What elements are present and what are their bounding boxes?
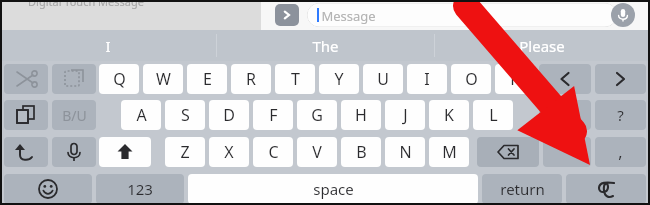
staticText: O: [465, 68, 478, 90]
button[interactable]: D: [209, 100, 249, 130]
button[interactable]: S: [165, 100, 205, 130]
button[interactable]: G: [297, 100, 337, 130]
button[interactable]: 123: [96, 174, 184, 204]
staticText: Please: [519, 36, 565, 56]
button[interactable]: space: [188, 174, 478, 204]
staticText: ?: [617, 105, 624, 125]
staticText: 123: [127, 179, 153, 199]
staticText: B: [356, 141, 367, 163]
button[interactable]: Undo: [4, 137, 48, 167]
staticText: I: [424, 68, 430, 90]
staticText: S: [181, 104, 190, 126]
button[interactable]: J: [385, 100, 425, 130]
staticText: C: [268, 141, 279, 163]
button[interactable]: B: [341, 137, 381, 167]
staticText: The: [312, 36, 339, 56]
staticText: Digital Touch Message: [28, 0, 144, 9]
button[interactable]: Q: [99, 64, 139, 94]
button[interactable]: Message: [307, 3, 617, 27]
button[interactable]: ?: [595, 100, 646, 130]
button[interactable]: Expand apps: [275, 4, 299, 26]
staticText: F: [269, 104, 278, 126]
button[interactable]: Select: [52, 64, 96, 94]
staticText: I: [105, 36, 111, 56]
button[interactable]: Bold italic underline: [52, 100, 96, 130]
staticText: J: [403, 104, 408, 126]
button[interactable]: Emoji: [4, 174, 92, 204]
button[interactable]: Hidden key: [543, 137, 591, 167]
button[interactable]: Y: [319, 64, 359, 94]
button[interactable]: H: [341, 100, 381, 130]
button[interactable]: R: [231, 64, 271, 94]
button[interactable]: X: [209, 137, 249, 167]
staticText: Y: [334, 68, 344, 90]
staticText: N: [399, 141, 412, 163]
staticText: U: [377, 68, 389, 90]
staticText: Message: [321, 7, 376, 25]
button[interactable]: U: [363, 64, 403, 94]
button[interactable]: Next: [595, 64, 646, 94]
button[interactable]: Cut: [4, 64, 48, 94]
button[interactable]: Shift: [99, 137, 151, 167]
button[interactable]: I: [0, 30, 216, 61]
staticText: R: [246, 68, 256, 90]
button[interactable]: O: [451, 64, 491, 94]
staticText: space: [313, 179, 354, 199]
button[interactable]: W: [143, 64, 183, 94]
staticText: A: [136, 104, 147, 126]
button[interactable]: N: [385, 137, 425, 167]
button[interactable]: F: [253, 100, 293, 130]
staticText: ,: [618, 141, 623, 163]
button[interactable]: Hidden key: [539, 100, 591, 130]
button[interactable]: Previous: [539, 64, 591, 94]
button[interactable]: P: [495, 64, 535, 94]
staticText: V: [312, 141, 322, 163]
staticText: Z: [180, 141, 190, 163]
staticText: L: [489, 104, 498, 126]
staticText: return: [500, 179, 545, 199]
button[interactable]: Dictate: [611, 3, 635, 27]
staticText: B/U: [62, 106, 87, 125]
button[interactable]: Please: [434, 30, 650, 61]
button[interactable]: L: [473, 100, 513, 130]
button[interactable]: T: [275, 64, 315, 94]
staticText: W: [156, 68, 171, 90]
button[interactable]: Z: [165, 137, 205, 167]
button[interactable]: A: [121, 100, 161, 130]
staticText: K: [444, 104, 454, 126]
button[interactable]: C: [253, 137, 293, 167]
button[interactable]: Handwriting: [566, 174, 646, 204]
staticText: E: [203, 68, 212, 90]
button[interactable]: ,: [595, 137, 646, 167]
button[interactable]: E: [187, 64, 227, 94]
staticText: D: [223, 104, 235, 126]
staticText: M: [442, 141, 457, 163]
button[interactable]: K: [429, 100, 469, 130]
staticText: T: [291, 68, 300, 90]
staticText: Q: [113, 68, 126, 90]
staticText: G: [311, 104, 323, 126]
staticText: P: [510, 68, 520, 90]
button[interactable]: M: [429, 137, 469, 167]
button[interactable]: Dictate: [52, 137, 96, 167]
button[interactable]: Delete: [477, 137, 539, 167]
button[interactable]: return: [482, 174, 562, 204]
button[interactable]: I: [407, 64, 447, 94]
button[interactable]: The: [216, 30, 434, 61]
staticText: X: [224, 141, 234, 163]
staticText: H: [355, 104, 367, 126]
button[interactable]: Paste: [4, 100, 48, 130]
button[interactable]: V: [297, 137, 337, 167]
